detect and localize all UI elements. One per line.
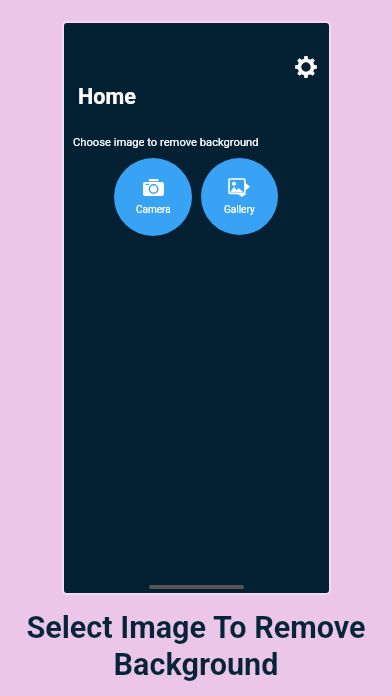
staticText: Camera [136,204,171,216]
staticText: Gallery [224,204,255,216]
staticText: Home [78,84,136,109]
button[interactable]: Settings [286,47,325,86]
staticText: Choose image to remove background [73,136,259,149]
staticText: Select Image To Remove Background [26,610,366,682]
button[interactable]: Camera [114,158,192,236]
button[interactable]: Gallery [201,158,278,235]
